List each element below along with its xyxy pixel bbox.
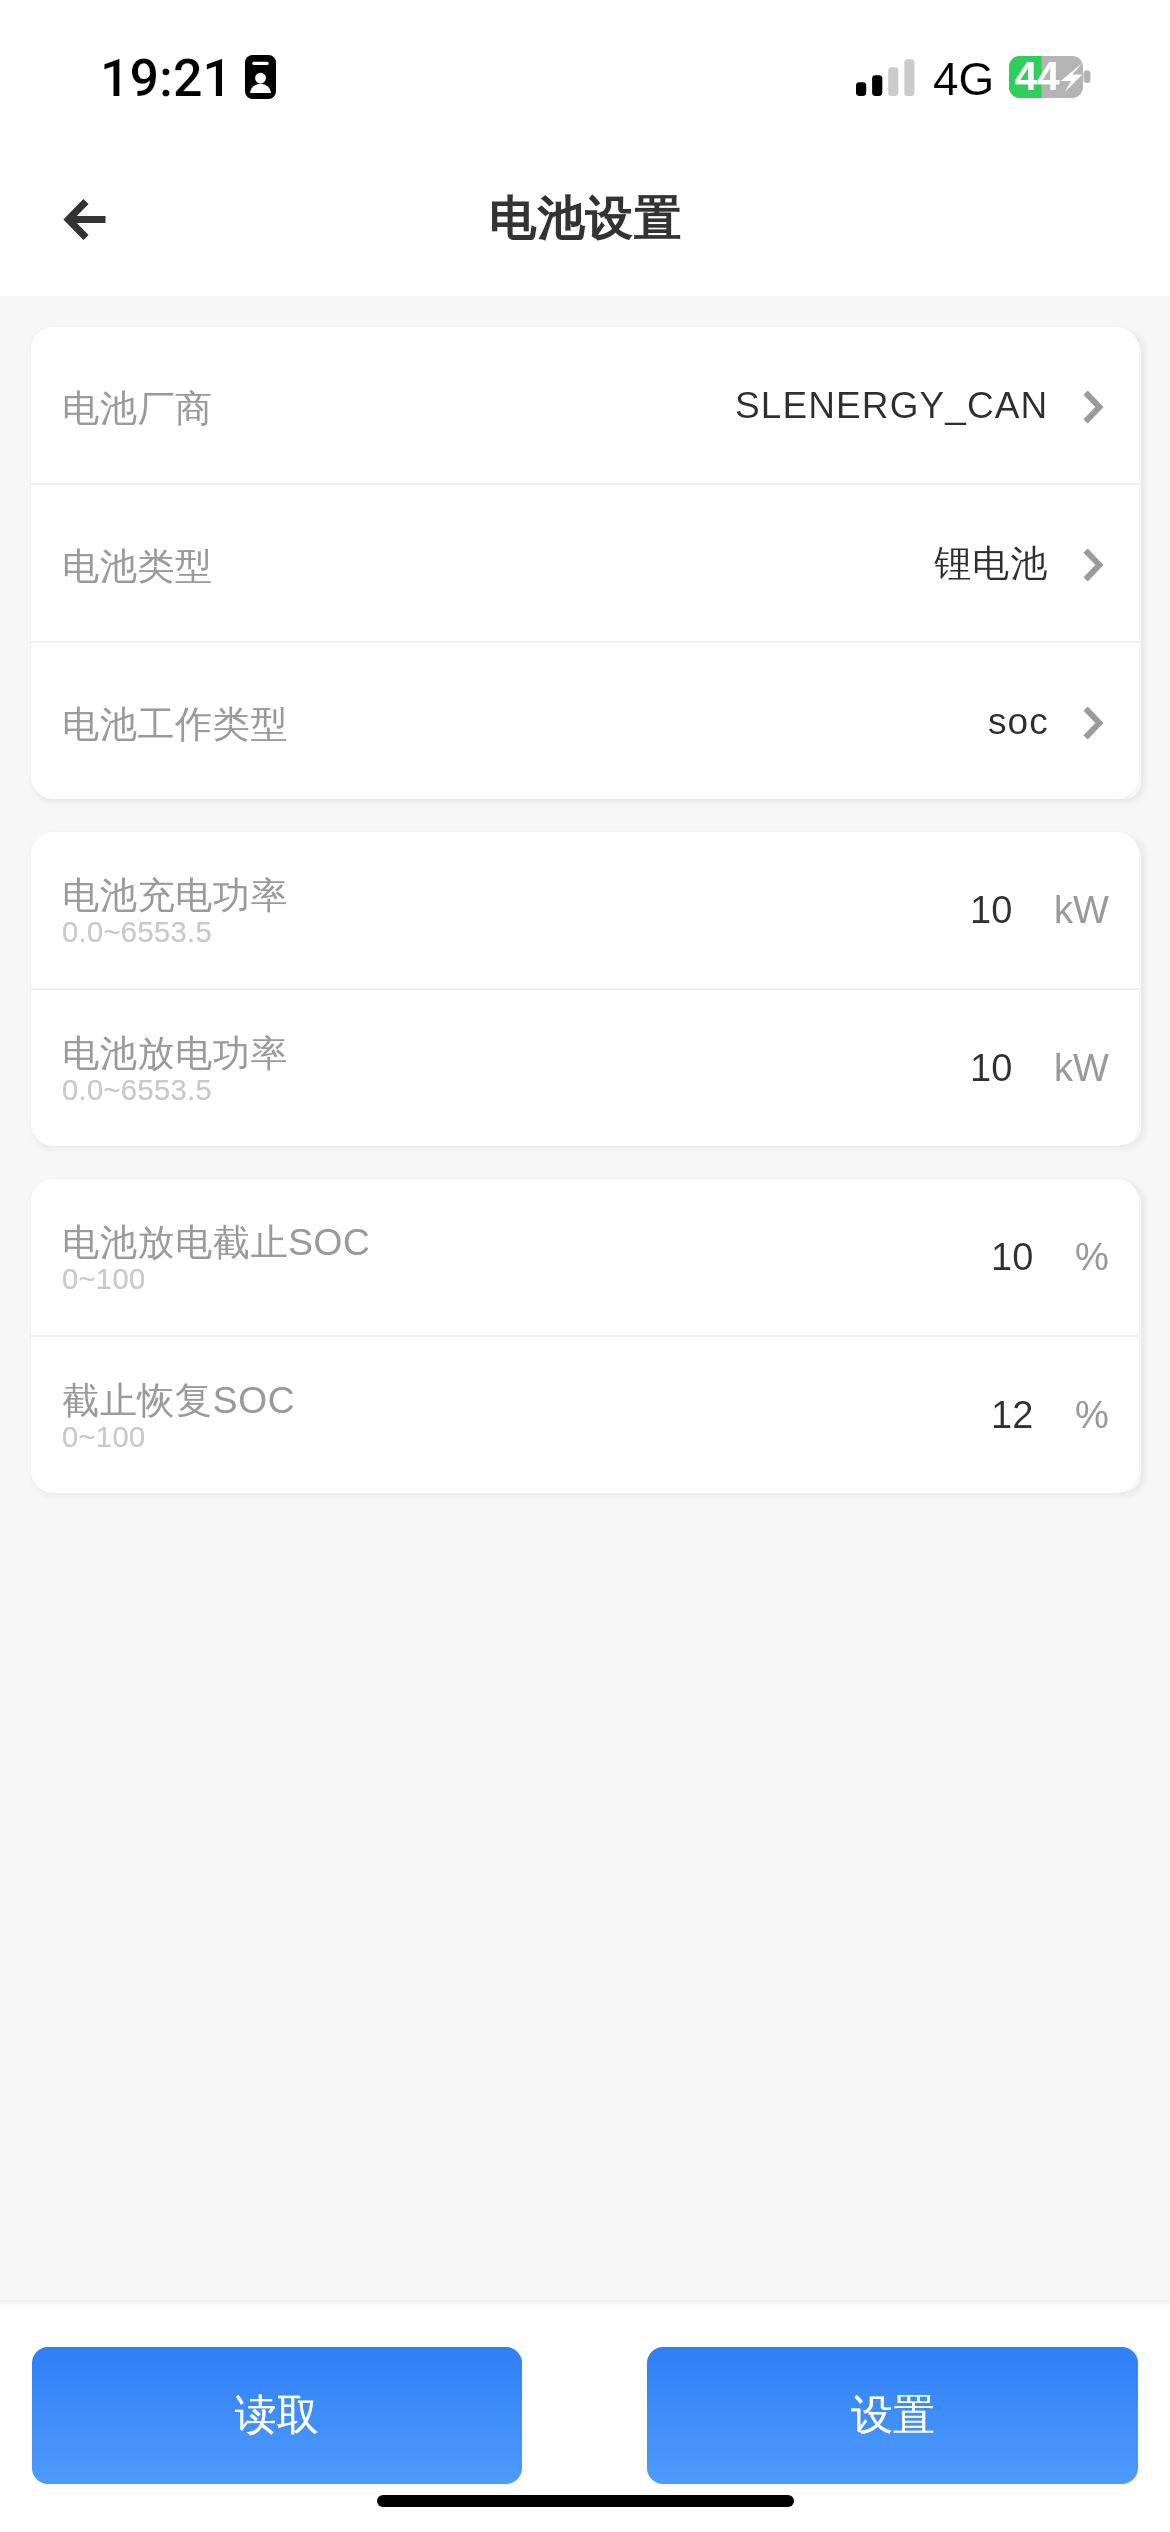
staticText: 电池类型 <box>62 543 213 590</box>
button[interactable]: 电池类型 <box>31 485 1139 641</box>
staticText: 截止恢复SOC <box>62 1377 296 1424</box>
staticText: 10 <box>970 1047 1013 1089</box>
staticText: 0.0~6553.5 <box>62 1074 212 1106</box>
button[interactable]: 读取 <box>32 2347 522 2484</box>
staticText: 电池厂商 <box>62 385 213 432</box>
staticText: 电池设置 <box>0 190 1170 249</box>
staticText: 12 <box>991 1394 1034 1436</box>
button[interactable]: 电池放电功率 <box>31 990 1139 1146</box>
staticText: SLENERGY_CAN <box>735 385 1049 426</box>
staticText: 44 <box>1015 54 1060 99</box>
button[interactable]: 电池充电功率 <box>31 832 1139 988</box>
staticText: kW <box>1054 889 1109 931</box>
staticText: 锂电池 <box>934 540 1049 587</box>
staticText: 电池放电功率 <box>62 1030 289 1077</box>
staticText: % <box>1075 1394 1109 1436</box>
staticText: 4G <box>933 53 995 104</box>
staticText: 0~100 <box>62 1263 146 1295</box>
staticText: 19:21 <box>100 48 233 109</box>
staticText: 读取 <box>235 2389 319 2442</box>
staticText: 0~100 <box>62 1421 146 1453</box>
staticText: 10 <box>970 889 1013 931</box>
button[interactable]: 设置 <box>647 2347 1138 2484</box>
staticText: % <box>1075 1236 1109 1278</box>
staticText: 设置 <box>851 2389 935 2442</box>
staticText: 0.0~6553.5 <box>62 916 212 948</box>
button[interactable]: 电池放电截止SOC <box>31 1179 1139 1335</box>
button[interactable]: Back <box>31 164 141 274</box>
button[interactable]: 电池工作类型 <box>31 643 1139 799</box>
staticText: 电池工作类型 <box>62 701 289 748</box>
staticText: kW <box>1054 1047 1109 1089</box>
staticText: 电池充电功率 <box>62 872 289 919</box>
staticText: 电池放电截止SOC <box>62 1219 371 1266</box>
staticText: 10 <box>991 1236 1034 1278</box>
staticText: soc <box>988 701 1049 742</box>
button[interactable]: 截止恢复SOC <box>31 1337 1139 1493</box>
button[interactable]: 电池厂商 <box>31 327 1139 483</box>
